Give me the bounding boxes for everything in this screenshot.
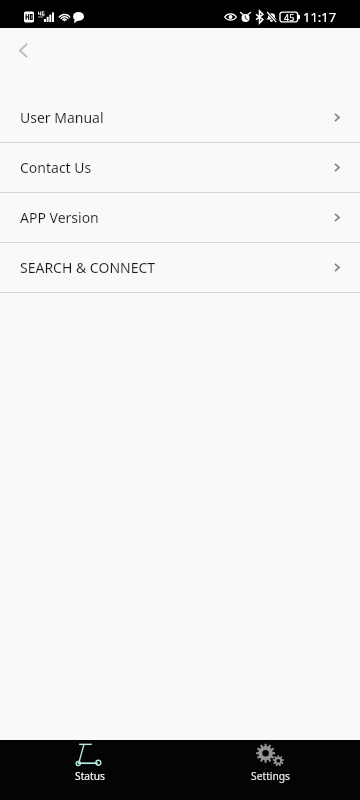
staticText: Contact Us <box>20 158 92 177</box>
button[interactable]: Status <box>0 740 180 800</box>
button[interactable]: User Manual <box>0 93 360 142</box>
button[interactable]: APP Version <box>0 193 360 242</box>
staticText: SEARCH & CONNECT <box>20 258 156 277</box>
button[interactable]: Settings <box>180 740 360 800</box>
staticText: Settings <box>251 769 290 783</box>
staticText: 11:17 <box>303 8 337 26</box>
button[interactable]: SEARCH & CONNECT <box>0 243 360 292</box>
staticText: 45 <box>284 11 295 23</box>
staticText: Status <box>75 769 105 783</box>
button[interactable]: Contact Us <box>0 143 360 192</box>
staticText: APP Version <box>20 208 99 227</box>
button[interactable]: Back <box>6 33 40 67</box>
staticText: User Manual <box>20 108 104 127</box>
